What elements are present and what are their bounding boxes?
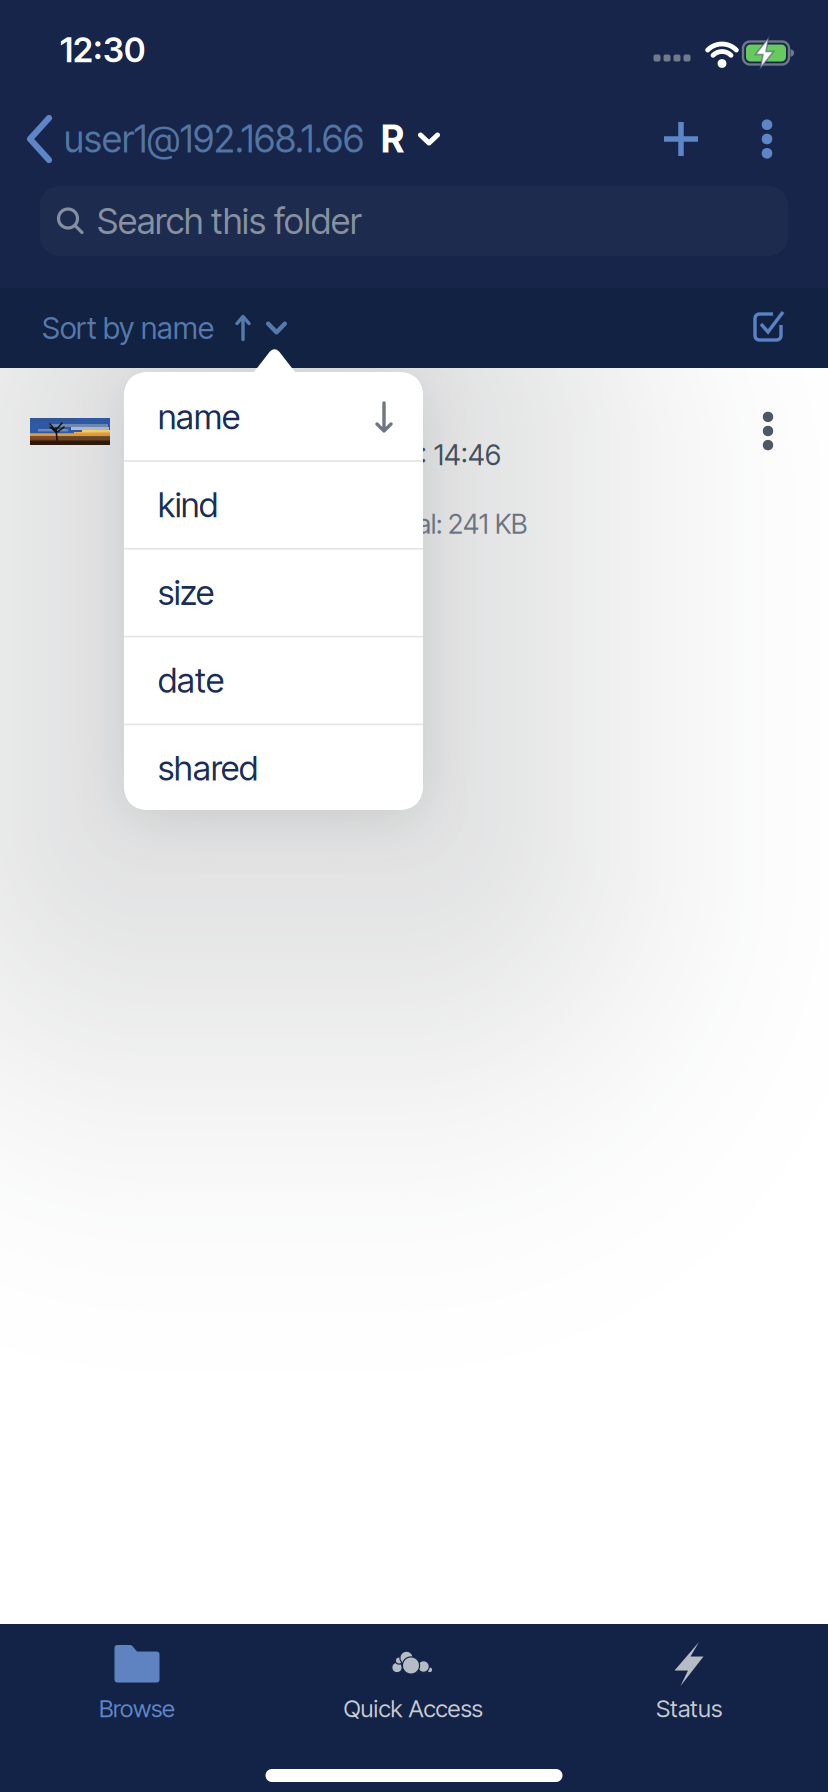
staticText: kind xyxy=(158,484,218,525)
staticText: Sort by name xyxy=(42,310,214,346)
button[interactable]: date xyxy=(124,637,423,724)
button[interactable]: Search this folder xyxy=(40,186,788,256)
staticText: Status xyxy=(656,1694,722,1723)
staticText: user1@192.168.1.66 xyxy=(64,117,364,161)
button[interactable]: R xyxy=(381,109,511,169)
button[interactable]: Add xyxy=(651,109,711,169)
button[interactable]: Quick Access xyxy=(278,1638,548,1723)
staticText: Browse xyxy=(99,1694,175,1723)
button[interactable]: Status xyxy=(554,1638,824,1723)
staticText: date xyxy=(158,660,224,701)
button[interactable]: More options xyxy=(745,109,789,169)
button[interactable]: name xyxy=(124,373,423,460)
staticText: al: 241 KB xyxy=(417,508,527,540)
staticText: R xyxy=(381,117,404,161)
staticText: : 14:46 xyxy=(420,438,501,472)
button[interactable]: kind xyxy=(124,461,423,548)
staticText: name xyxy=(158,396,240,437)
button[interactable]: Select xyxy=(742,301,794,353)
button[interactable]: Browse xyxy=(2,1638,272,1723)
staticText: shared xyxy=(158,748,258,789)
button[interactable]: File actions xyxy=(744,399,792,463)
button[interactable]: user1@192.168.1.66 xyxy=(25,109,445,169)
button[interactable]: shared xyxy=(124,725,423,812)
staticText: size xyxy=(158,572,214,613)
staticText: Search this folder xyxy=(97,199,362,242)
staticText: 12:30 xyxy=(60,29,145,70)
staticText: Quick Access xyxy=(343,1694,482,1723)
button[interactable]: Sort by name xyxy=(42,300,362,356)
button[interactable]: size xyxy=(124,549,423,636)
